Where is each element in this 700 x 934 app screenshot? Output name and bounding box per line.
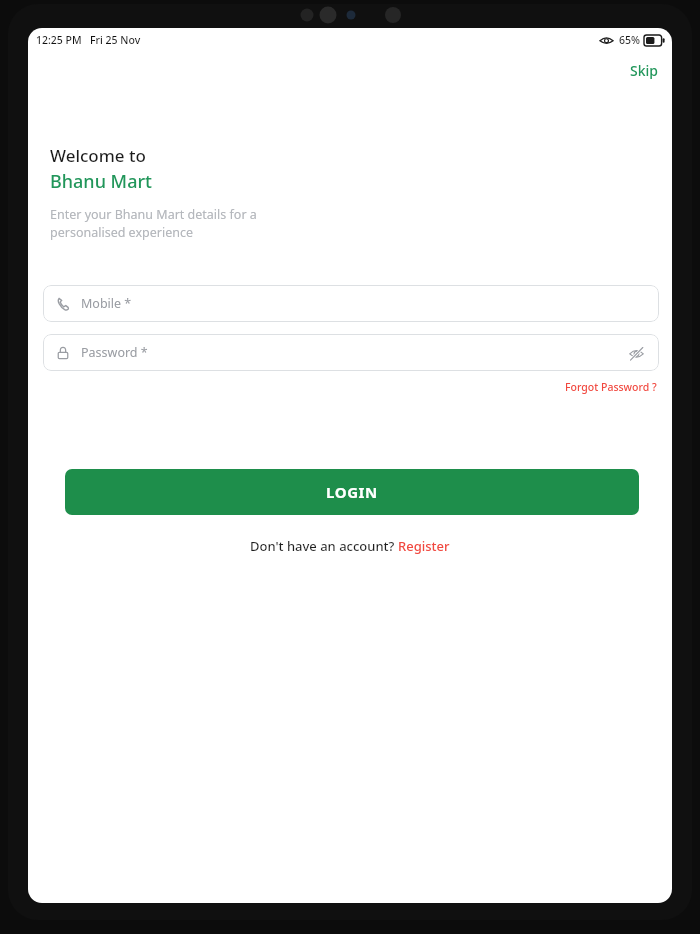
staticText: Don't have an account? (250, 537, 398, 555)
staticText: Bhanu Mart (50, 169, 152, 194)
staticText: 12:25 PM (36, 33, 82, 47)
staticText: Welcome to (50, 144, 146, 167)
button[interactable]: Forgot Password ? (563, 378, 659, 396)
staticText: Skip (630, 61, 658, 80)
staticText: Register (398, 537, 450, 555)
button[interactable]: LOGIN (65, 469, 639, 515)
staticText: Mobile * (81, 295, 132, 312)
staticText: Password * (81, 344, 148, 361)
button[interactable]: Skip (616, 57, 672, 84)
staticText: 65% (619, 33, 640, 47)
staticText: Forgot Password ? (565, 380, 657, 394)
button[interactable]: Mobile (43, 285, 659, 322)
staticText: Fri 25 Nov (90, 33, 141, 47)
other: Password (56, 346, 70, 360)
staticText: Enter your Bhanu Mart details for a pers… (50, 206, 257, 241)
button[interactable]: Show password (625, 342, 647, 364)
other: Mobile (56, 297, 70, 311)
button[interactable]: Register (398, 537, 450, 555)
staticText: LOGIN (326, 482, 378, 502)
button[interactable]: Password (43, 334, 659, 371)
